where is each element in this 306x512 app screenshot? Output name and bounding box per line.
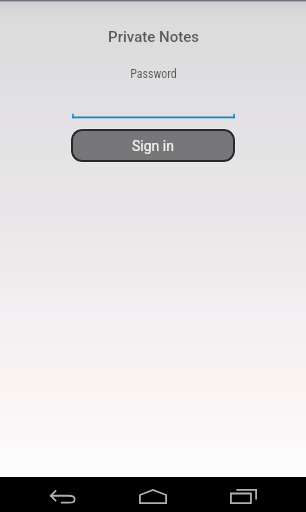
staticText: Sign in — [132, 138, 174, 154]
button[interactable]: Back — [38, 477, 88, 512]
button[interactable]: Home — [128, 477, 178, 512]
button[interactable]: Recent apps — [218, 477, 268, 512]
staticText: Private Notes — [108, 28, 199, 46]
button[interactable]: Sign in — [71, 129, 235, 162]
staticText: Password — [130, 67, 177, 81]
